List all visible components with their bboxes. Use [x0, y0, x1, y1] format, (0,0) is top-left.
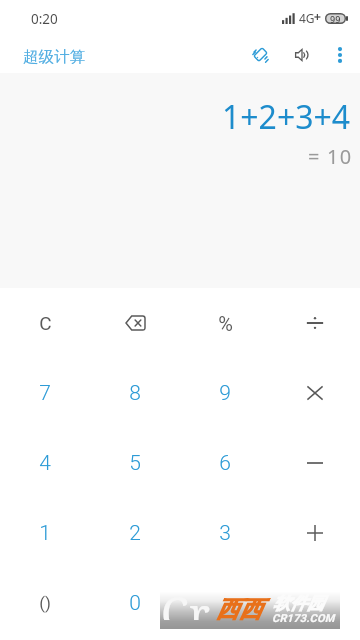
- button[interactable]: 4: [0, 428, 90, 498]
- button[interactable]: [270, 358, 360, 428]
- staticText: (): [39, 593, 51, 613]
- button[interactable]: 8: [90, 358, 180, 428]
- staticText: =: [310, 592, 321, 615]
- button[interactable]: %: [180, 288, 270, 358]
- button[interactable]: [270, 428, 360, 498]
- staticText: %: [218, 312, 233, 335]
- button[interactable]: [270, 288, 360, 358]
- button[interactable]: Shake to clear: [242, 36, 279, 73]
- staticText: 1: [39, 521, 51, 546]
- button[interactable]: 7: [0, 358, 90, 428]
- staticText: 6: [219, 451, 231, 476]
- staticText: CR173.COM: [272, 612, 335, 625]
- staticText: 4G: [299, 10, 315, 26]
- staticText: 超级计算: [23, 47, 85, 67]
- staticText: 5: [129, 451, 141, 476]
- staticText: 3: [219, 521, 231, 546]
- staticText: 7: [39, 381, 51, 406]
- button[interactable]: 3: [180, 498, 270, 568]
- staticText: Cr: [161, 583, 210, 620]
- staticText: 99: [330, 13, 341, 24]
- button[interactable]: 6: [180, 428, 270, 498]
- button[interactable]: 0: [90, 568, 180, 638]
- button[interactable]: (): [0, 568, 90, 638]
- button[interactable]: C: [0, 288, 90, 358]
- button[interactable]: 9: [180, 358, 270, 428]
- button[interactable]: [90, 288, 180, 358]
- button[interactable]: 1: [0, 498, 90, 568]
- staticText: 9: [219, 381, 231, 406]
- button[interactable]: [270, 498, 360, 568]
- staticText: 西西: [216, 595, 262, 624]
- button[interactable]: 2: [90, 498, 180, 568]
- staticText: C: [39, 312, 52, 334]
- staticText: 8: [129, 381, 141, 406]
- staticText: 软件园: [273, 593, 324, 614]
- button[interactable]: 5: [90, 428, 180, 498]
- staticText: 1+2+3+4: [222, 95, 351, 139]
- staticText: 2: [129, 521, 141, 546]
- button[interactable]: .: [180, 568, 270, 638]
- button[interactable]: More options: [322, 36, 358, 73]
- staticText: = 10: [308, 143, 353, 170]
- staticText: 4: [39, 451, 51, 476]
- staticText: 0: [129, 591, 141, 616]
- button[interactable]: Sound: [283, 36, 320, 73]
- staticText: 0:20: [31, 10, 58, 28]
- button[interactable]: =: [270, 568, 360, 638]
- staticText: .: [222, 591, 228, 616]
